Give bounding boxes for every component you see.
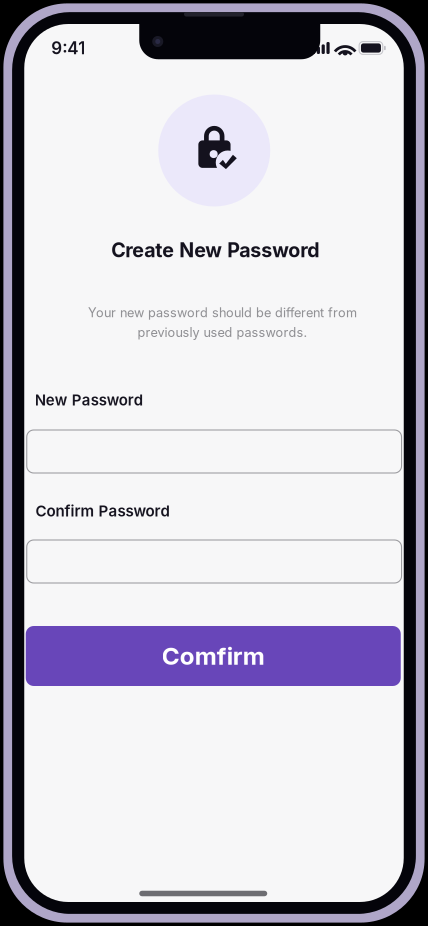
staticText: New Password — [35, 391, 143, 409]
button[interactable]: Comfirm — [26, 626, 401, 686]
staticText: 9:41 — [51, 38, 85, 58]
staticText: Your new password should be different fr… — [88, 305, 357, 340]
staticText: Confirm Password — [35, 502, 169, 520]
staticText: Create New Password — [111, 238, 319, 262]
staticText: Comfirm — [162, 641, 265, 671]
